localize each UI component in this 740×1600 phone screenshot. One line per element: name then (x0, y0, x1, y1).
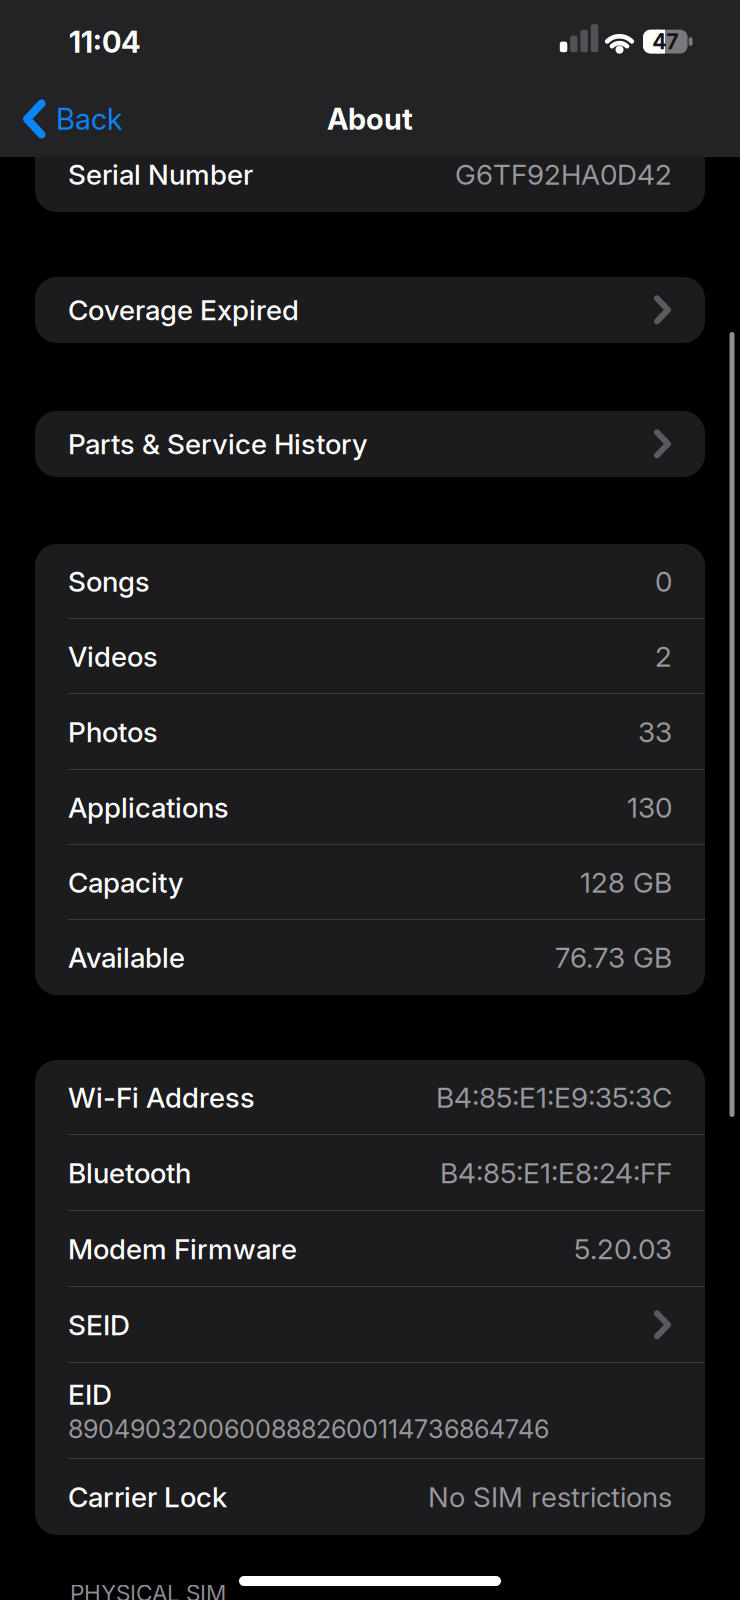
staticText: B4:85:E1:E9:35:3C (436, 1081, 672, 1114)
staticText: Applications (68, 791, 229, 824)
staticText: 11:04 (69, 25, 141, 59)
staticText: Coverage Expired (68, 293, 299, 326)
button[interactable]: Parts & Service History (35, 411, 705, 477)
button[interactable]: SEID (35, 1287, 705, 1363)
staticText: 33 (638, 715, 672, 748)
staticText: No SIM restrictions (428, 1480, 672, 1513)
staticText: PHYSICAL SIM (70, 1580, 226, 1600)
staticText: Available (68, 941, 185, 974)
button[interactable]: Back (25, 97, 123, 141)
staticText: 130 (627, 791, 672, 824)
staticText: Wi-Fi Address (68, 1081, 255, 1114)
staticText: 128 GB (580, 866, 672, 899)
staticText: Bluetooth (68, 1156, 191, 1189)
staticText: 2 (655, 640, 672, 673)
staticText: 47 (652, 29, 678, 54)
staticText: Serial Number (68, 158, 253, 191)
staticText: About (327, 102, 413, 136)
staticText: Modem Firmware (68, 1232, 297, 1265)
button[interactable]: Coverage Expired (35, 277, 705, 343)
staticText: 76.73 GB (555, 941, 672, 974)
staticText: Photos (68, 715, 158, 748)
staticText: B4:85:E1:E8:24:FF (440, 1156, 672, 1189)
staticText: EID (68, 1378, 112, 1411)
staticText: G6TF92HA0D42 (455, 158, 672, 191)
staticText: Carrier Lock (68, 1480, 227, 1513)
staticText: Capacity (68, 866, 184, 899)
staticText: 5.20.03 (574, 1232, 672, 1265)
staticText: Songs (68, 565, 150, 598)
staticText: Videos (68, 640, 158, 673)
staticText: 0 (655, 565, 672, 598)
staticText: Parts & Service History (68, 427, 368, 460)
staticText: 89049032006008882600114736864746 (68, 1414, 549, 1444)
staticText: SEID (68, 1308, 130, 1341)
staticText: Back (56, 102, 123, 136)
